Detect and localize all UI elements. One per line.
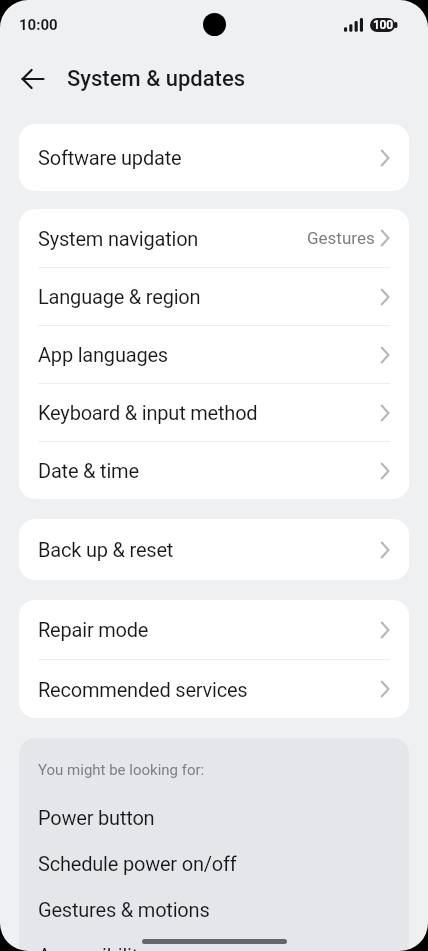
staticText: Keyboard & input method [38,401,258,424]
button[interactable]: Back up & reset [19,519,409,580]
staticText: Gestures [307,228,375,248]
staticText: Date & time [38,459,139,482]
button[interactable]: App languages [19,326,409,383]
button[interactable]: Date & time [19,442,409,499]
staticText: 100 [373,18,393,32]
button[interactable]: Gestures & motions [19,886,409,932]
button[interactable]: Power button [19,794,409,840]
staticText: Back up & reset [38,538,174,561]
staticText: Recommended services [38,678,248,701]
button[interactable] [16,62,50,96]
staticText: Power button [38,806,155,829]
button[interactable]: Accessibility [19,932,409,951]
staticText: You might be looking for: [38,761,205,779]
staticText: Schedule power on/off [38,852,237,875]
button[interactable]: Keyboard & input method [19,384,409,441]
button[interactable]: Language & region [19,268,409,325]
staticText: Accessibility [38,944,148,951]
staticText: System navigation [38,227,199,250]
button[interactable]: Software update [19,124,409,191]
staticText: System & updates [67,66,246,92]
button[interactable]: Schedule power on/off [19,840,409,886]
button[interactable]: Recommended services [19,660,409,718]
button[interactable]: You might be looking for: [19,752,409,788]
staticText: App languages [38,343,168,366]
button[interactable]: System navigation [19,209,409,267]
button[interactable]: Repair mode [19,600,409,659]
staticText: Software update [38,146,182,169]
staticText: Language & region [38,285,201,308]
staticText: 10:00 [19,16,58,34]
staticText: Repair mode [38,618,149,641]
staticText: Gestures & motions [38,898,210,921]
